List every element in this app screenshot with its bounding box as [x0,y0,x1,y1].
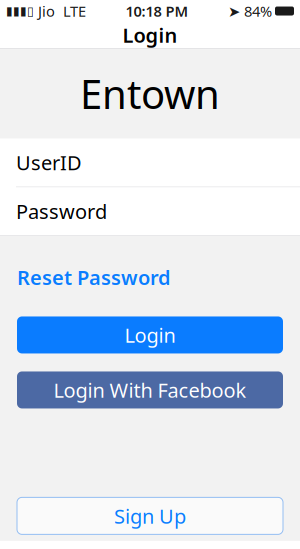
button[interactable]: Reset Password [17,256,171,298]
staticText: UserID [16,149,82,176]
staticText: Entown [80,67,220,120]
staticText: Reset Password [17,264,171,290]
button[interactable]: Sign Up [17,497,283,534]
button[interactable]: Login [17,316,283,353]
staticText: Login [124,322,175,348]
staticText: Jio LTE [34,1,86,21]
staticText: 10:18 PM [125,1,188,21]
button[interactable]: Login With Facebook [17,371,283,408]
staticText: Sign Up [114,503,186,529]
staticText: Login [122,22,177,48]
staticText: ▮▮▮▯ [6,4,34,18]
staticText: ➤ 84% [228,1,272,21]
staticText: Password [16,198,107,224]
staticText: Login With Facebook [53,377,246,403]
